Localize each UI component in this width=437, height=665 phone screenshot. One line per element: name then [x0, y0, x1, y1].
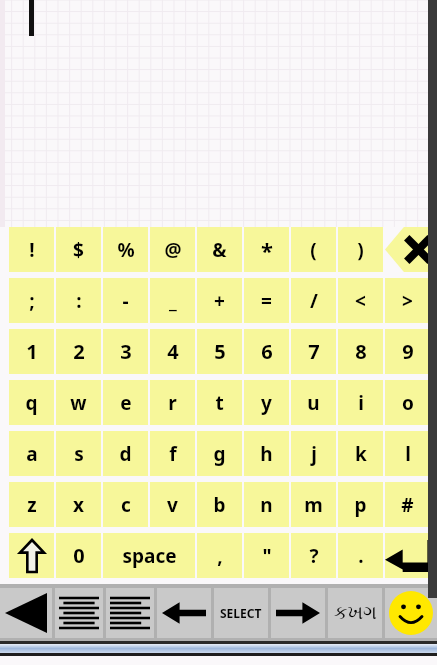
- staticText: o: [402, 390, 414, 416]
- button[interactable]: -: [103, 278, 148, 323]
- button[interactable]: u: [291, 380, 336, 425]
- button[interactable]: Align center: [55, 588, 103, 638]
- staticText: t: [215, 390, 224, 416]
- button[interactable]: Move right: [271, 588, 325, 638]
- staticText: %: [117, 237, 135, 263]
- button[interactable]: x: [56, 482, 101, 527]
- staticText: :: [76, 288, 82, 314]
- button[interactable]: :: [56, 278, 101, 323]
- button[interactable]: h: [244, 431, 289, 476]
- button[interactable]: 8: [338, 329, 383, 374]
- button[interactable]: .: [338, 533, 383, 578]
- button[interactable]: 2: [56, 329, 101, 374]
- button[interactable]: a: [9, 431, 54, 476]
- staticText: @: [164, 237, 182, 263]
- button[interactable]: e: [103, 380, 148, 425]
- button[interactable]: >: [385, 278, 430, 323]
- button[interactable]: <: [338, 278, 383, 323]
- button[interactable]: space: [103, 533, 195, 578]
- button[interactable]: 5: [197, 329, 242, 374]
- staticText: p: [354, 492, 367, 518]
- staticText: *: [261, 235, 273, 265]
- button[interactable]: +: [197, 278, 242, 323]
- button[interactable]: *: [244, 227, 289, 272]
- staticText: q: [25, 390, 38, 416]
- staticText: ": [262, 543, 272, 569]
- staticText: 5: [214, 338, 226, 365]
- button[interactable]: y: [244, 380, 289, 425]
- button[interactable]: Emoji: [385, 588, 437, 638]
- button[interactable]: ;: [9, 278, 54, 323]
- button[interactable]: ": [244, 533, 289, 578]
- button[interactable]: 3: [103, 329, 148, 374]
- staticText: 4: [167, 338, 179, 365]
- staticText: /: [310, 288, 318, 314]
- button[interactable]: c: [103, 482, 148, 527]
- button[interactable]: =: [244, 278, 289, 323]
- staticText: ): [357, 237, 364, 263]
- button[interactable]: f: [150, 431, 195, 476]
- button[interactable]: p: [338, 482, 383, 527]
- button[interactable]: 9: [385, 329, 430, 374]
- staticText: 0: [73, 542, 85, 569]
- button[interactable]: Align left: [106, 588, 154, 638]
- button[interactable]: #: [385, 482, 430, 527]
- staticText: .: [358, 543, 364, 569]
- button[interactable]: 1: [9, 329, 54, 374]
- button[interactable]: Backspace: [385, 227, 437, 272]
- button[interactable]: %: [103, 227, 148, 272]
- staticText: b: [213, 492, 226, 518]
- button[interactable]: r: [150, 380, 195, 425]
- button[interactable]: t: [197, 380, 242, 425]
- staticText: 7: [308, 338, 320, 365]
- button[interactable]: 0: [56, 533, 101, 578]
- staticText: v: [167, 492, 178, 518]
- button[interactable]: Move left: [157, 588, 211, 638]
- button[interactable]: w: [56, 380, 101, 425]
- button[interactable]: Shift: [9, 533, 54, 578]
- staticText: g: [213, 441, 226, 467]
- button[interactable]: Back: [0, 588, 52, 638]
- button[interactable]: z: [9, 482, 54, 527]
- button[interactable]: i: [338, 380, 383, 425]
- button[interactable]: b: [197, 482, 242, 527]
- button[interactable]: j: [291, 431, 336, 476]
- button[interactable]: (: [291, 227, 336, 272]
- button[interactable]: o: [385, 380, 430, 425]
- button[interactable]: m: [291, 482, 336, 527]
- button[interactable]: Gujarati layout: [328, 588, 382, 638]
- button[interactable]: ): [338, 227, 383, 272]
- button[interactable]: Enter: [385, 533, 437, 578]
- staticText: s: [74, 441, 84, 467]
- staticText: ,: [217, 543, 223, 569]
- button[interactable]: /: [291, 278, 336, 323]
- button[interactable]: q: [9, 380, 54, 425]
- button[interactable]: ?: [291, 533, 336, 578]
- staticText: n: [260, 492, 273, 518]
- button[interactable]: !: [9, 227, 54, 272]
- button[interactable]: ,: [197, 533, 242, 578]
- button[interactable]: _: [150, 278, 195, 323]
- button[interactable]: 4: [150, 329, 195, 374]
- button[interactable]: d: [103, 431, 148, 476]
- button[interactable]: k: [338, 431, 383, 476]
- button[interactable]: Select: [214, 588, 268, 638]
- button[interactable]: l: [385, 431, 430, 476]
- staticText: #: [401, 492, 414, 518]
- button[interactable]: v: [150, 482, 195, 527]
- button[interactable]: n: [244, 482, 289, 527]
- button[interactable]: s: [56, 431, 101, 476]
- staticText: 1: [26, 338, 38, 365]
- button[interactable]: g: [197, 431, 242, 476]
- button[interactable]: @: [150, 227, 195, 272]
- button[interactable]: &: [197, 227, 242, 272]
- staticText: h: [260, 441, 273, 467]
- staticText: -: [122, 288, 129, 314]
- staticText: <: [355, 288, 366, 314]
- staticText: y: [261, 390, 272, 416]
- staticText: (: [310, 237, 317, 263]
- button[interactable]: 6: [244, 329, 289, 374]
- button[interactable]: $: [56, 227, 101, 272]
- button[interactable]: [0, 0, 437, 227]
- button[interactable]: 7: [291, 329, 336, 374]
